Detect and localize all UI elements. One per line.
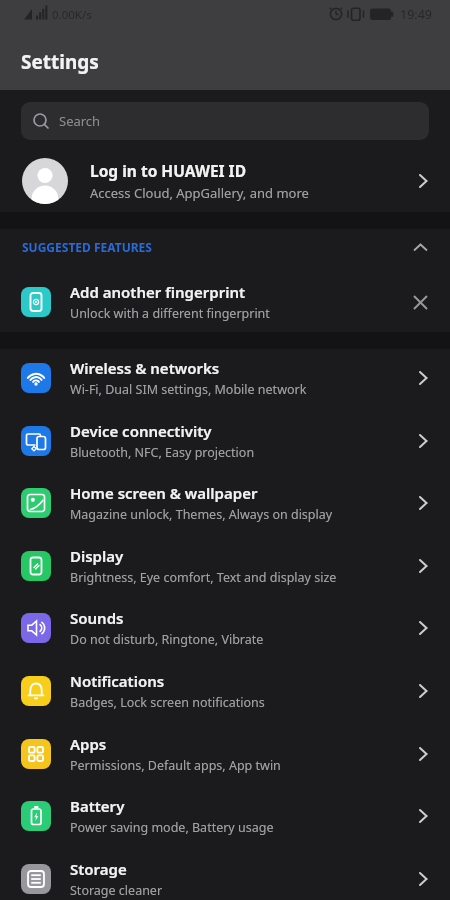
button[interactable]: Display	[0, 534, 450, 597]
staticText: Brightness, Eye comfort, Text and displa…	[70, 569, 337, 586]
staticText: Apps	[70, 734, 107, 754]
staticText: Access Cloud, AppGallery, and more	[90, 184, 309, 202]
staticText: Magazine unlock, Themes, Always on displ…	[70, 506, 333, 523]
staticText: Search	[59, 112, 101, 130]
staticText: Bluetooth, NFC, Easy projection	[70, 444, 255, 461]
staticText: Storage	[70, 859, 127, 879]
staticText: 19:49	[400, 6, 432, 23]
staticText: Wireless & networks	[70, 358, 220, 378]
staticText: Do not disturb, Ringtone, Vibrate	[70, 631, 264, 648]
staticText: Battery	[70, 796, 125, 816]
button[interactable]: Battery	[0, 784, 450, 847]
button[interactable]: Storage	[0, 847, 450, 900]
staticText: Sounds	[70, 608, 124, 628]
staticText: Unlock with a different fingerprint	[70, 305, 270, 322]
button[interactable]: Home screen & wallpaper	[0, 471, 450, 534]
staticText: Settings	[21, 49, 99, 75]
button[interactable]: Wireless & networks	[0, 346, 450, 409]
staticText: 0.00K/s	[52, 7, 92, 23]
staticText: Storage cleaner	[70, 882, 163, 899]
button[interactable]: Notifications	[0, 659, 450, 722]
staticText: Permissions, Default apps, App twin	[70, 757, 281, 774]
staticText: Power saving mode, Battery usage	[70, 819, 274, 836]
staticText: Badges, Lock screen notifications	[70, 694, 265, 711]
button[interactable]: Sounds	[0, 596, 450, 659]
button[interactable]: Add another fingerprint	[0, 271, 450, 333]
button[interactable]: SUGGESTED FEATURES	[0, 233, 450, 261]
staticText: Device connectivity	[70, 421, 212, 441]
staticText: Log in to HUAWEI ID	[90, 160, 246, 181]
staticText: Add another fingerprint	[70, 282, 246, 302]
staticText: Home screen & wallpaper	[70, 483, 258, 503]
staticText: Notifications	[70, 671, 165, 691]
button[interactable]: Apps	[0, 722, 450, 785]
staticText: Wi-Fi, Dual SIM settings, Mobile network	[70, 381, 307, 398]
button[interactable]: Device connectivity	[0, 409, 450, 472]
button[interactable]: Log in to HUAWEI ID	[0, 150, 450, 212]
staticText: SUGGESTED FEATURES	[22, 239, 152, 255]
staticText: Display	[70, 546, 124, 566]
button[interactable]: Search	[21, 102, 429, 140]
